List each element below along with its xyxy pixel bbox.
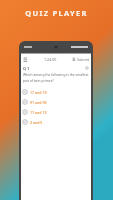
staticText: Submit <box>77 57 89 62</box>
staticText: pair of twin primes? <box>23 78 54 82</box>
staticText: Which among the following is the smalles… <box>23 72 89 76</box>
staticText: 17 and 19 <box>30 90 47 95</box>
button[interactable]: QUIZ PLAYER <box>0 6 113 19</box>
staticText: 91 and 93 <box>30 100 47 105</box>
button[interactable]: 91 and 93 <box>22 97 91 107</box>
button[interactable]: 1:24:00 <box>21 54 91 64</box>
button[interactable]: 11 and 13 <box>22 107 91 117</box>
staticText: Q 1 <box>23 66 30 71</box>
staticText: 11 and 13 <box>30 110 47 115</box>
staticText: 3 and 5 <box>30 120 43 125</box>
staticText: QUIZ PLAYER <box>25 8 88 18</box>
staticText: 1:24:00 <box>44 57 57 62</box>
button[interactable]: 17 and 19 <box>22 87 91 97</box>
button[interactable]: 3 and 5 <box>22 117 91 127</box>
